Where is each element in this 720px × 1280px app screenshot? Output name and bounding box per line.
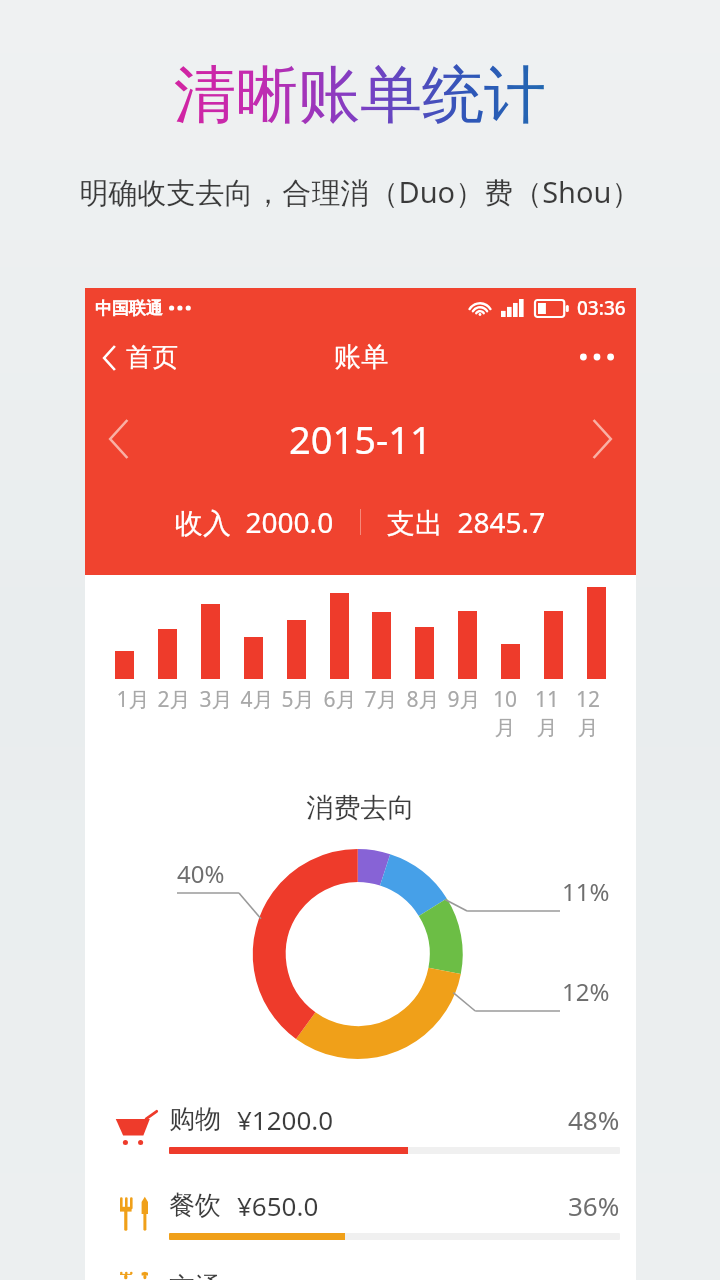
staticText: 5月 (280, 685, 316, 714)
staticText: 消费去向 (85, 791, 636, 825)
button[interactable]: 餐饮 (85, 1185, 636, 1243)
staticText: 03:36 (577, 295, 626, 321)
button[interactable]: 交通 (85, 1271, 636, 1280)
staticText: 48% (568, 1102, 620, 1137)
staticText: 7月 (363, 685, 399, 714)
button[interactable]: Next month (568, 400, 636, 478)
staticText: 2015-11 (289, 413, 432, 465)
staticText: 4月 (239, 685, 275, 714)
button[interactable]: 购物 (85, 1099, 636, 1157)
button[interactable]: More options (558, 335, 636, 379)
staticText: 10月 (487, 685, 523, 741)
staticText: 40% (177, 857, 225, 890)
staticText: 9月 (446, 685, 482, 714)
staticText: ¥650.0 (237, 1188, 319, 1223)
staticText: 8月 (405, 685, 441, 714)
staticText: ¥1200.0 (237, 1102, 334, 1137)
staticText: 购物 (169, 1103, 221, 1136)
staticText: 11% (562, 875, 610, 908)
staticText: 收入 2000.0 (175, 503, 334, 541)
button[interactable]: 首页 (85, 333, 192, 382)
staticText: 12月 (570, 685, 606, 741)
staticText: 首页 (126, 341, 178, 374)
staticText: 清晰账单统计 (0, 56, 720, 134)
staticText: 账单 (334, 340, 388, 374)
staticText: 支出 2845.7 (387, 503, 546, 541)
staticText: 12% (562, 975, 610, 1008)
staticText: 2月 (156, 685, 192, 714)
staticText: 明确收支去向，合理消（Duo）费（Shou） (0, 172, 720, 212)
staticText: 中国联通 (95, 298, 163, 319)
staticText: 交通 (169, 1271, 221, 1280)
staticText: 1月 (115, 685, 151, 714)
staticText: 餐饮 (169, 1189, 221, 1222)
staticText: 3月 (198, 685, 234, 714)
staticText: 6月 (322, 685, 358, 714)
staticText: 11月 (529, 685, 565, 741)
button[interactable]: Previous month (85, 400, 153, 478)
staticText: 36% (568, 1188, 620, 1223)
